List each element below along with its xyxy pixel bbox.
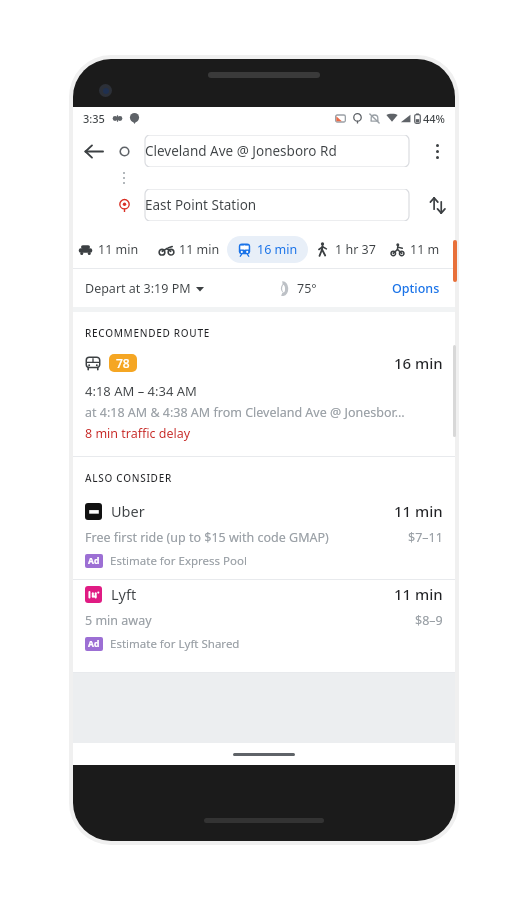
staticText: 3:35 <box>83 111 105 126</box>
staticText: Depart at 3:19 PM <box>85 280 191 297</box>
staticText: Lyft <box>111 584 137 604</box>
button[interactable]: East Point Station <box>135 189 419 221</box>
button[interactable]: 11 m <box>383 236 447 263</box>
staticText: Estimate for Express Pool <box>110 553 247 569</box>
staticText: 11 min <box>394 501 443 521</box>
staticText: 16 min <box>394 353 443 373</box>
button[interactable]: Uber <box>73 497 455 579</box>
button[interactable]: Back <box>73 131 113 171</box>
staticText: $7–11 <box>408 529 443 546</box>
staticText: Options <box>392 280 440 297</box>
staticText: 16 min <box>257 241 298 258</box>
staticText: RECOMMENDED ROUTE <box>85 326 210 340</box>
staticText: 5 min away <box>85 612 152 629</box>
staticText: 11 min <box>179 241 220 258</box>
staticText: 4:18 AM – 4:34 AM <box>85 382 197 400</box>
staticText: Uber <box>111 501 145 521</box>
staticText: Ad <box>88 638 100 650</box>
staticText: 11 min <box>98 241 139 258</box>
staticText: $8–9 <box>415 612 443 629</box>
button[interactable]: Options <box>389 277 443 300</box>
staticText: 44% <box>423 111 445 126</box>
staticText: Cleveland Ave @ Jonesboro Rd <box>145 142 337 160</box>
staticText: 78 <box>116 355 130 371</box>
button[interactable]: 1 hr 37 <box>308 236 383 263</box>
button[interactable]: More options <box>419 133 455 169</box>
button[interactable]: Depart at 3:19 PM <box>85 277 204 300</box>
staticText: 75° <box>297 280 317 297</box>
staticText: at 4:18 AM & 4:38 AM from Cleveland Ave … <box>85 404 405 421</box>
button[interactable]: RECOMMENDED ROUTE <box>73 312 455 456</box>
button[interactable]: 11 min <box>152 236 227 263</box>
button[interactable]: Swap origin and destination <box>419 187 455 223</box>
staticText: 8 min traffic delay <box>85 425 191 442</box>
button[interactable]: 11 min <box>73 236 146 263</box>
staticText: 11 m <box>410 241 440 258</box>
staticText: Free first ride (up to $15 with code GMA… <box>85 529 329 546</box>
button[interactable]: Cleveland Ave @ Jonesboro Rd <box>135 135 419 167</box>
staticText: 1 hr 37 <box>335 241 376 258</box>
button[interactable]: Lyft <box>73 580 455 662</box>
button[interactable]: 16 min <box>227 236 308 263</box>
staticText: East Point Station <box>145 196 257 214</box>
staticText: ALSO CONSIDER <box>85 471 172 485</box>
staticText: Ad <box>88 555 100 567</box>
staticText: 11 min <box>394 584 443 604</box>
staticText: Estimate for Lyft Shared <box>110 636 240 652</box>
